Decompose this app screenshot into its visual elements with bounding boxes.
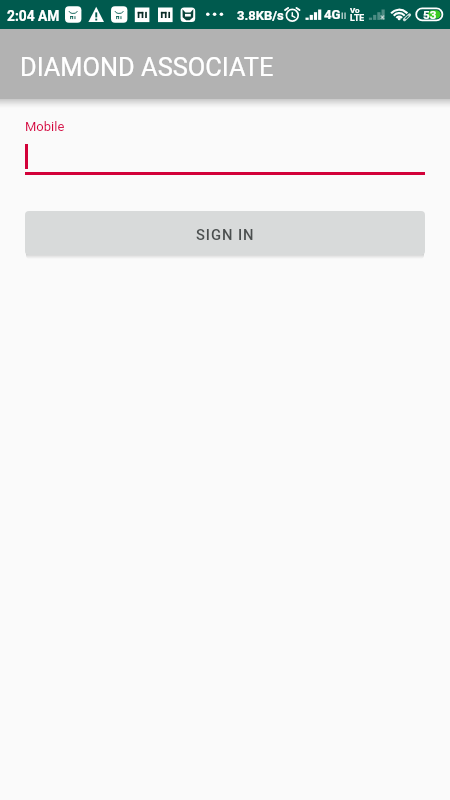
staticText: Mobile — [25, 119, 65, 134]
staticText: LTE — [350, 13, 365, 23]
staticText: 2:04 AM — [7, 8, 60, 24]
staticText: Vo — [350, 6, 360, 15]
staticText: 4G — [324, 7, 341, 22]
staticText: SIGN IN — [196, 226, 255, 243]
staticText: DIAMOND ASSOCIATE — [20, 52, 274, 82]
staticText: 53 — [423, 8, 437, 22]
button[interactable]: SIGN IN — [25, 211, 425, 255]
button[interactable]: Mobile number input field — [25, 115, 425, 175]
staticText: 3.8KB/s — [237, 8, 284, 23]
